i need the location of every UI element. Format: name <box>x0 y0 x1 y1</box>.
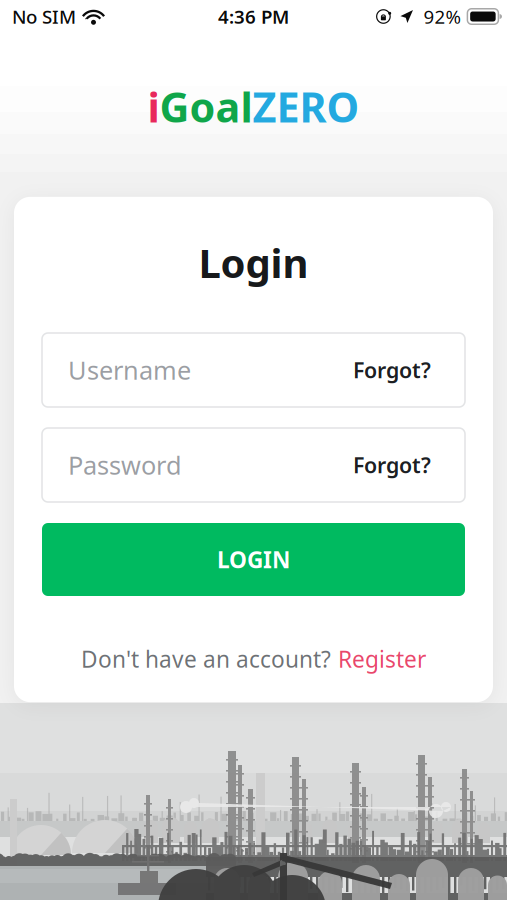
staticText: Username <box>68 353 191 387</box>
staticText: Forgot? <box>353 451 431 479</box>
staticText: ZERO <box>252 79 359 134</box>
staticText: i <box>147 79 159 134</box>
staticText: Password <box>68 448 182 482</box>
button[interactable]: Don't have an account? <box>81 644 426 674</box>
staticText: Forgot? <box>353 356 431 384</box>
staticText: Register <box>338 644 426 674</box>
button[interactable]: Forgot? <box>353 356 431 384</box>
staticText: Goal <box>159 79 252 134</box>
button[interactable]: LOGIN <box>42 523 465 596</box>
staticText: 92% <box>423 4 461 29</box>
staticText: 4:36 PM <box>218 4 289 29</box>
staticText: No SIM <box>12 4 76 29</box>
staticText: Don't have an account? <box>81 644 331 674</box>
staticText: Login <box>198 236 308 289</box>
button[interactable]: Forgot? <box>353 451 431 479</box>
staticText: LOGIN <box>217 544 290 575</box>
